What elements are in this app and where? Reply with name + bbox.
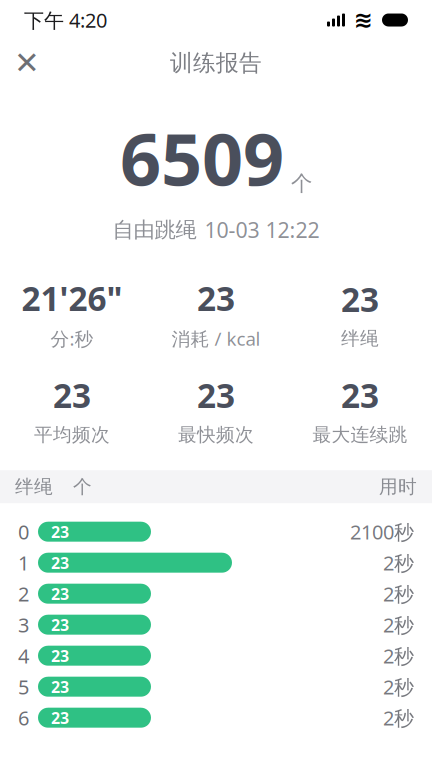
staticText: 2100秒 (350, 518, 414, 545)
staticText: 23 (51, 614, 69, 635)
staticText: 绊绳 (341, 327, 379, 350)
button[interactable]: Close (5, 41, 49, 85)
staticText: 绊绳 (15, 475, 53, 498)
staticText: 2秒 (383, 580, 414, 607)
staticText: 2 (18, 580, 29, 607)
staticText: 2秒 (383, 673, 414, 700)
staticText: 1 (18, 549, 29, 576)
staticText: 23 (51, 707, 69, 728)
staticText: ≋ (354, 7, 373, 33)
staticText: 自由跳绳 (112, 217, 196, 243)
staticText: 23 (341, 373, 379, 417)
staticText: 23 (197, 276, 235, 320)
staticText: 最快频次 (178, 423, 254, 446)
staticText: 最大连续跳 (312, 423, 407, 446)
staticText: 个 (291, 170, 312, 197)
staticText: 5 (18, 673, 29, 700)
staticText: 23 (53, 373, 91, 417)
staticText: 6 (18, 704, 29, 731)
staticText: 23 (341, 277, 379, 321)
staticText: 23 (51, 521, 69, 542)
staticText: 下午 4:20 (24, 7, 107, 33)
staticText: 2秒 (383, 704, 414, 731)
staticText: 4 (18, 642, 29, 669)
staticText: 2秒 (383, 549, 414, 576)
staticText: 23 (51, 676, 69, 697)
staticText: 训练报告 (170, 49, 262, 77)
staticText: 23 (51, 552, 69, 573)
staticText: 10-03 12:22 (204, 216, 319, 244)
staticText: 3 (18, 611, 29, 638)
staticText: 2秒 (383, 611, 414, 638)
staticText: 个 (73, 475, 92, 498)
staticText: 23 (51, 645, 69, 666)
staticText: ✕ (14, 46, 40, 80)
staticText: 平均频次 (34, 423, 110, 446)
staticText: 0 (18, 518, 29, 545)
staticText: 分:秒 (50, 326, 93, 351)
staticText: 21'26" (21, 276, 122, 320)
staticText: 23 (51, 583, 69, 604)
staticText: 用时 (379, 475, 417, 498)
staticText: 2秒 (383, 642, 414, 669)
staticText: 23 (197, 373, 235, 417)
staticText: 消耗 / kcal (171, 326, 260, 351)
staticText: 6509 (120, 110, 284, 206)
